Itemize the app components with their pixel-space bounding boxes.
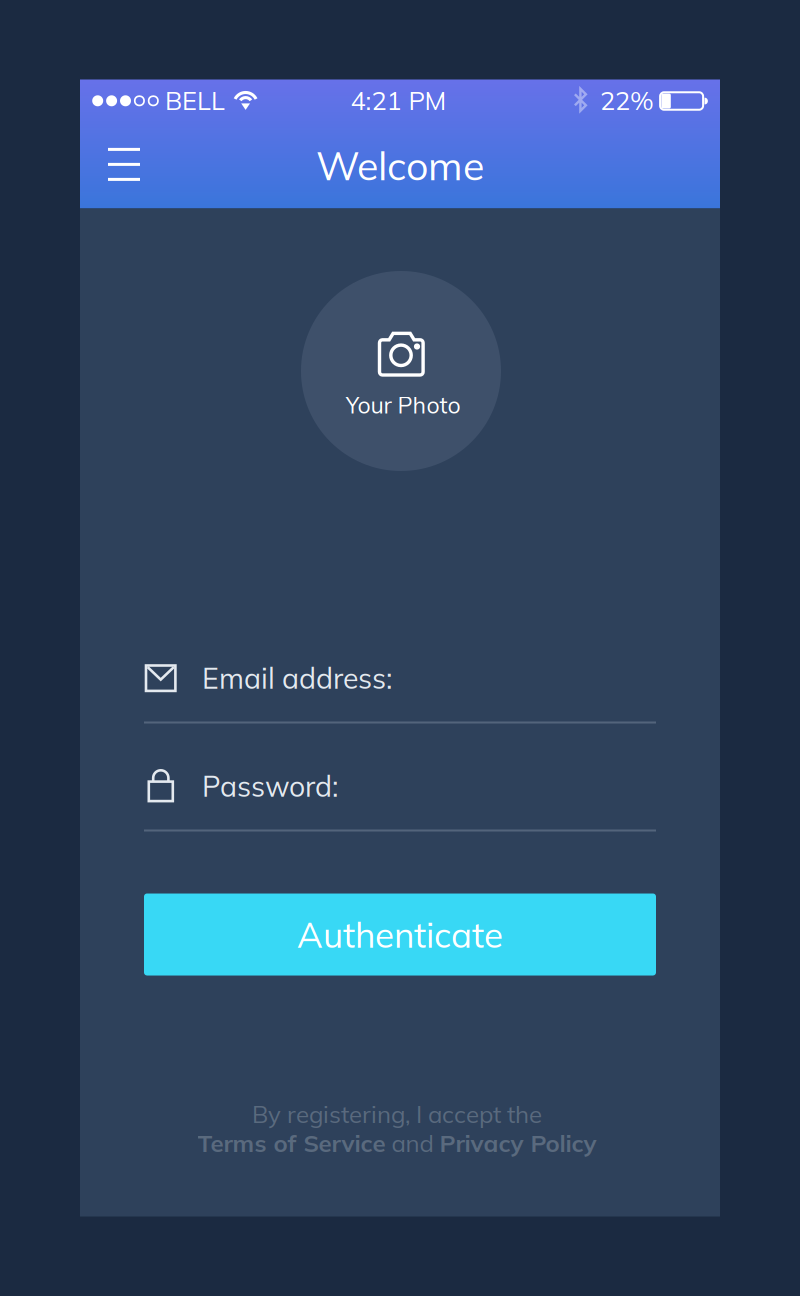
staticText: Email address: — [202, 660, 392, 696]
staticText: By registering, I accept the — [252, 1099, 542, 1129]
staticText: Password: — [202, 768, 338, 804]
staticText: Privacy Policy — [439, 1128, 596, 1158]
staticText: Welcome — [316, 141, 484, 190]
button[interactable]: Privacy Policy — [439, 1128, 596, 1158]
staticText: Authenticate — [297, 913, 503, 956]
button[interactable]: Your Photo — [301, 271, 501, 471]
staticText: 22% — [600, 85, 654, 116]
staticText: and — [385, 1128, 439, 1158]
staticText: 4:21 PM — [350, 85, 446, 116]
staticText: BELL — [165, 85, 225, 116]
button[interactable]: Terms of Service — [197, 1128, 385, 1158]
button[interactable]: Menu — [80, 120, 168, 209]
button[interactable]: Authenticate — [144, 893, 656, 975]
staticText: Terms of Service — [197, 1128, 385, 1158]
staticText: Your Photo — [345, 390, 460, 419]
